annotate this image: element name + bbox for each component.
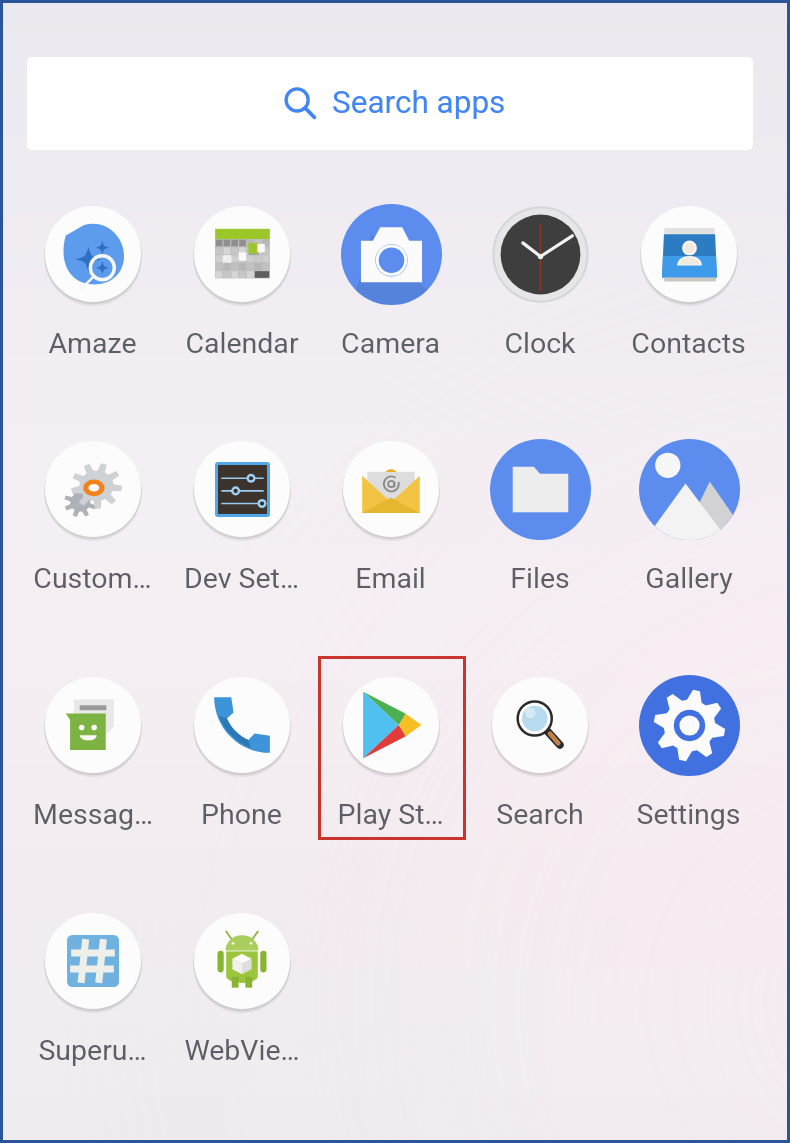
staticText: Gallery <box>645 562 733 595</box>
staticText: Phone <box>201 798 282 831</box>
button[interactable]: Search <box>465 672 614 831</box>
button[interactable]: Messag… <box>18 672 167 831</box>
staticText: Files <box>510 562 570 595</box>
button[interactable]: Settings <box>614 672 763 831</box>
staticText: Search apps <box>332 84 506 121</box>
staticText: Search <box>496 798 584 831</box>
button[interactable]: Dev Set… <box>167 436 316 595</box>
button[interactable]: Amaze <box>18 201 167 360</box>
button[interactable]: Files <box>465 436 614 595</box>
button[interactable]: Email <box>316 436 465 595</box>
button[interactable]: Calendar <box>167 201 316 360</box>
staticText: Settings <box>636 798 741 831</box>
button[interactable]: Custom… <box>18 436 167 595</box>
staticText: Messag… <box>33 798 153 831</box>
button[interactable]: Contacts <box>614 201 763 360</box>
staticText: Amaze <box>48 327 137 360</box>
button[interactable]: Phone <box>167 672 316 831</box>
button[interactable]: Search apps <box>27 57 753 150</box>
button[interactable]: Superu… <box>18 908 167 1067</box>
staticText: Play St… <box>337 798 444 831</box>
staticText: Camera <box>341 327 440 360</box>
button[interactable]: Clock <box>465 201 614 360</box>
staticText: Dev Set… <box>184 562 299 595</box>
button[interactable]: Play St… <box>316 672 465 831</box>
staticText: Contacts <box>631 327 746 360</box>
staticText: Custom… <box>33 562 152 595</box>
button[interactable]: WebVie… <box>167 908 316 1067</box>
button[interactable]: Camera <box>316 201 465 360</box>
staticText: WebVie… <box>184 1034 300 1067</box>
button[interactable]: Gallery <box>614 436 763 595</box>
staticText: Superu… <box>38 1034 147 1067</box>
staticText: Clock <box>504 327 576 360</box>
staticText: Calendar <box>185 327 299 360</box>
staticText: Email <box>355 562 426 595</box>
